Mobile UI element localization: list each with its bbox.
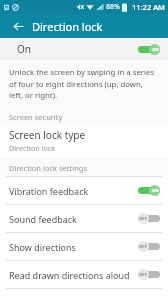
staticText: 11:22 AM [132,2,165,12]
staticText: Unlock the screen by swiping in a series… [9,67,156,100]
button[interactable]: On [138,44,160,55]
button[interactable]: Vibration feedback [0,177,168,204]
staticText: OFF [139,244,147,250]
staticText: Sound feedback [9,213,138,225]
button[interactable]: Sound feedback [0,205,168,232]
staticText: Screen lock type [9,128,86,142]
button[interactable]: Off [138,241,160,252]
staticText: Vibration feedback [9,185,138,197]
staticText: ON [152,188,159,194]
staticText: ON [152,47,159,53]
staticText: Direction lock [32,19,103,34]
staticText: OFF [139,216,147,222]
button[interactable]: Show directions [0,233,168,260]
staticText: Show directions [9,241,138,253]
button[interactable]: Off [138,213,160,224]
button[interactable]: On [0,38,168,60]
staticText: Read drawn directions aloud [9,269,138,281]
staticText: OFF [139,272,147,278]
staticText: Direction lock [9,143,56,153]
button[interactable]: Off [138,269,160,280]
button[interactable]: Read drawn directions aloud [0,261,168,288]
button[interactable]: Navigate up [8,16,28,36]
staticText: 88% [106,2,120,12]
button[interactable]: On [138,185,160,196]
button[interactable]: Screen lock type [0,125,168,158]
staticText: Direction lock settings [9,163,87,173]
staticText: On [17,42,31,56]
staticText: Screen security [9,112,63,122]
